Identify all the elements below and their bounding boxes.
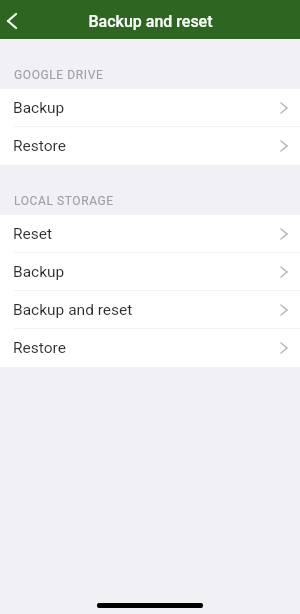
staticText: Backup and reset — [88, 12, 213, 31]
staticText: Backup and reset — [13, 301, 133, 319]
staticText: LOCAL STORAGE — [14, 194, 114, 208]
button[interactable]: Backup — [0, 89, 300, 127]
staticText: Restore — [13, 339, 66, 357]
staticText: Backup — [13, 99, 65, 117]
button[interactable]: Back — [0, 0, 40, 39]
staticText: GOOGLE DRIVE — [14, 68, 104, 82]
button[interactable]: Restore — [0, 329, 300, 367]
staticText: Backup — [13, 263, 65, 281]
button[interactable]: Backup — [0, 253, 300, 291]
button[interactable]: Reset — [0, 215, 300, 253]
button[interactable]: Backup and reset — [0, 291, 300, 329]
staticText: Reset — [13, 225, 53, 243]
staticText: Restore — [13, 137, 66, 155]
button[interactable]: Restore — [0, 127, 300, 165]
